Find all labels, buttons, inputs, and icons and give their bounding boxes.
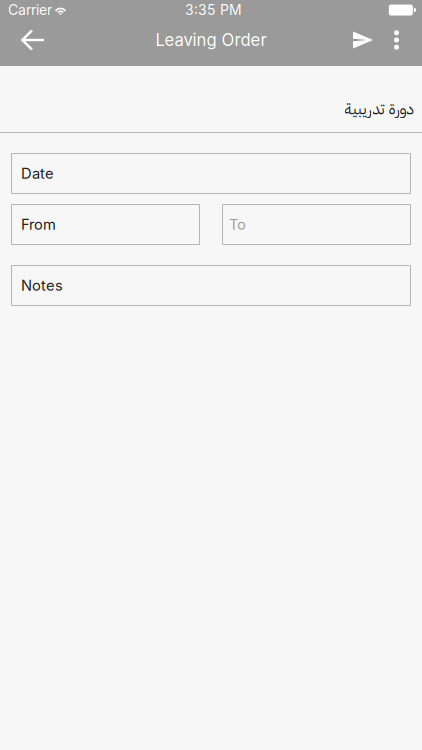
- staticText: دورة تدريبية: [344, 97, 413, 121]
- staticText: To: [229, 216, 246, 233]
- staticText: Date: [21, 165, 54, 182]
- staticText: From: [21, 216, 56, 233]
- button[interactable]: Back: [0, 20, 55, 60]
- button[interactable]: Date: [11, 153, 411, 194]
- button[interactable]: Send: [329, 20, 378, 60]
- button[interactable]: To: [222, 204, 411, 245]
- button[interactable]: From: [11, 204, 200, 245]
- button[interactable]: Notes: [11, 265, 411, 306]
- button[interactable]: More options: [378, 20, 422, 60]
- staticText: Notes: [21, 277, 63, 294]
- staticText: Leaving Order: [155, 30, 266, 50]
- staticText: 3:35 PM: [185, 1, 242, 18]
- staticText: Carrier: [8, 1, 52, 18]
